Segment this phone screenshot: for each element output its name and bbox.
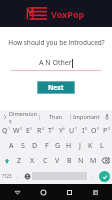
staticText: 3 (30, 126, 33, 131)
button[interactable]: Important (71, 110, 101, 123)
button[interactable]: N (75, 153, 87, 168)
staticText: Next (48, 83, 64, 92)
staticText: X (30, 156, 35, 166)
button[interactable]: O (90, 123, 101, 138)
button[interactable]: U (68, 123, 79, 138)
button[interactable]: Enter (99, 171, 110, 182)
button[interactable]: , (14, 168, 22, 184)
button[interactable]: Y (57, 123, 68, 138)
button[interactable]: Voice input (101, 110, 112, 123)
staticText: 7 (75, 126, 78, 131)
button[interactable]: A (5, 138, 17, 153)
staticText: 1 (8, 126, 11, 131)
staticText: H (66, 141, 72, 151)
button[interactable]: H (63, 138, 74, 153)
staticText: 2 (20, 126, 23, 131)
staticText: A N Other (39, 58, 72, 68)
staticText: How should you be introduced? (8, 38, 105, 47)
staticText: 6 (63, 126, 66, 131)
button[interactable]: F (41, 138, 52, 153)
button[interactable]: X (26, 153, 39, 168)
staticText: J (79, 141, 81, 151)
button[interactable]: V (51, 153, 63, 168)
staticText: R (37, 126, 42, 136)
staticText: S (21, 141, 25, 151)
staticText: , (17, 173, 19, 180)
button[interactable]: Change language (22, 168, 32, 184)
staticText: K (88, 141, 93, 151)
button[interactable]: C (39, 153, 51, 168)
staticText: Y (59, 126, 63, 136)
staticText: Z (17, 156, 22, 166)
staticText: N (78, 156, 84, 166)
staticText: Important (73, 113, 100, 120)
button[interactable]: W (12, 123, 24, 138)
staticText: A (9, 141, 14, 151)
button[interactable]: S (17, 138, 29, 153)
button[interactable]: P (101, 123, 112, 138)
staticText: Q (2, 126, 8, 136)
button[interactable]: ?123 (0, 168, 14, 184)
button[interactable]: J (74, 138, 85, 153)
staticText: E (26, 126, 30, 136)
button[interactable]: Z (13, 153, 26, 168)
staticText: . (91, 172, 93, 180)
staticText: I (82, 126, 85, 136)
staticText: T (48, 126, 52, 136)
button[interactable]: M (87, 153, 99, 168)
button[interactable]: T (46, 123, 57, 138)
button[interactable]: . (87, 168, 96, 184)
staticText: V (55, 156, 60, 166)
staticText: C (43, 156, 48, 166)
button[interactable]: Expand suggestions (0, 110, 9, 123)
staticText: Dimensions (9, 110, 39, 123)
staticText: U (69, 126, 75, 136)
button[interactable]: R (35, 123, 46, 138)
staticText: W (13, 126, 20, 136)
button[interactable]: Dimensions (9, 110, 39, 123)
staticText: B (67, 156, 72, 166)
staticText: ?123 (2, 173, 12, 179)
button[interactable]: Backspace (99, 153, 112, 168)
button[interactable]: I (79, 123, 90, 138)
staticText: F (45, 141, 49, 151)
button[interactable]: Back (10, 185, 24, 199)
button[interactable]: Screenshot (88, 185, 102, 199)
button[interactable]: Next (37, 81, 75, 94)
staticText: M (90, 156, 97, 166)
staticText: 9 (97, 126, 100, 131)
staticText: O (91, 126, 97, 136)
button[interactable]: Recent apps (62, 185, 76, 199)
button[interactable]: B (63, 153, 75, 168)
staticText: Than (49, 113, 62, 120)
button[interactable]: E (24, 123, 35, 138)
button[interactable]: Home (36, 185, 50, 199)
staticText: 0 (108, 126, 111, 131)
button[interactable]: Q (0, 123, 12, 138)
staticText: G (55, 141, 61, 151)
staticText: VoxPop (51, 8, 85, 20)
staticText: 5 (52, 126, 55, 131)
staticText: D (32, 141, 38, 151)
staticText: L (100, 141, 104, 151)
button[interactable]: Shift (0, 153, 13, 168)
staticText: P (103, 126, 108, 136)
staticText: 4 (42, 126, 45, 131)
button[interactable]: L (96, 138, 107, 153)
button[interactable]: K (85, 138, 96, 153)
staticText: 8 (85, 126, 88, 131)
button[interactable]: Than (40, 110, 70, 123)
button[interactable]: G (52, 138, 63, 153)
button[interactable]: A N Other (11, 58, 101, 71)
button[interactable]: D (29, 138, 41, 153)
